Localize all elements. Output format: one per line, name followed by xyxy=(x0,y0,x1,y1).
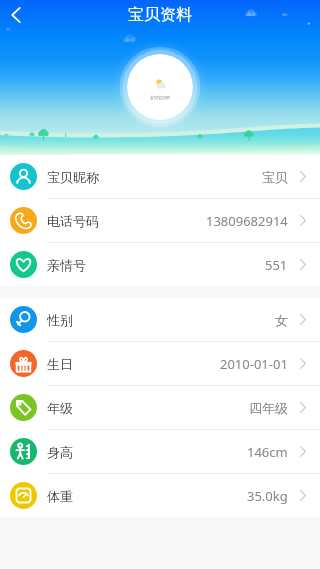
staticText: 宝贝宝贝的 xyxy=(150,95,170,100)
staticText: 身高 xyxy=(47,444,73,460)
button[interactable]: 宝贝宝贝的 xyxy=(127,54,193,120)
staticText: 女 xyxy=(275,312,288,328)
staticText: 年级 xyxy=(47,400,73,416)
button[interactable]: 宝贝昵称 xyxy=(0,155,320,198)
button[interactable]: 身高 xyxy=(0,430,320,473)
staticText: 生日 xyxy=(47,356,73,372)
staticText: 宝贝资料 xyxy=(128,5,192,25)
staticText: 电话号码 xyxy=(47,213,99,229)
staticText: 35.0kg xyxy=(247,487,288,505)
staticText: 宝贝 xyxy=(262,169,288,185)
button[interactable]: 年级 xyxy=(0,386,320,429)
button[interactable]: 生日 xyxy=(0,342,320,385)
staticText: 亲情号 xyxy=(47,257,86,273)
staticText: 2010-01-01 xyxy=(220,355,288,373)
staticText: 四年级 xyxy=(249,400,288,416)
button[interactable]: 亲情号 xyxy=(0,243,320,286)
button[interactable]: 电话号码 xyxy=(0,199,320,242)
button[interactable]: 体重 xyxy=(0,474,320,517)
staticText: 551 xyxy=(265,256,288,274)
staticText: 146cm xyxy=(247,443,288,461)
staticText: 性别 xyxy=(47,312,73,328)
staticText: 宝贝昵称 xyxy=(47,169,99,185)
button[interactable]: Back xyxy=(0,0,31,30)
staticText: 体重 xyxy=(47,488,73,504)
button[interactable]: 性别 xyxy=(0,298,320,341)
staticText: 13809682914 xyxy=(206,212,288,230)
